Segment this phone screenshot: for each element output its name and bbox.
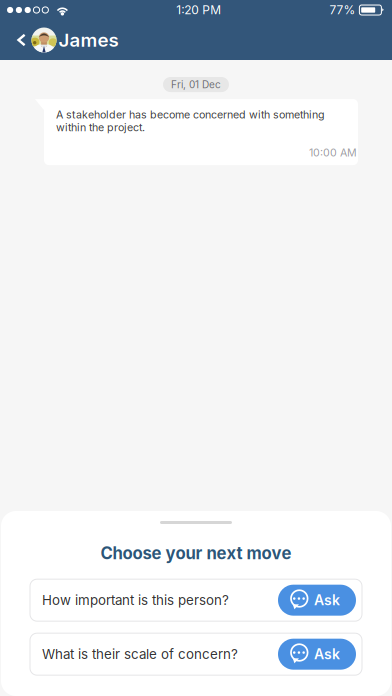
staticText: Ask: [314, 592, 340, 609]
staticText: 77%: [329, 3, 355, 17]
staticText: 10:00 AM: [309, 146, 357, 159]
staticText: Choose your next move: [100, 543, 291, 563]
staticText: A stakeholder has become concerned with …: [56, 108, 325, 134]
staticText: How important is this person?: [42, 592, 229, 608]
staticText: James: [58, 29, 118, 51]
staticText: Fri, 01 Dec: [171, 78, 221, 91]
button[interactable]: What is their scale of concern?: [30, 633, 362, 675]
button[interactable]: How important is this person?: [30, 579, 362, 621]
staticText: Ask: [314, 646, 340, 663]
staticText: What is their scale of concern?: [42, 646, 238, 662]
staticText: 1:20 PM: [176, 3, 221, 17]
button[interactable]: Back, James: [0, 20, 128, 60]
